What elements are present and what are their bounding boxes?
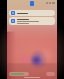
button[interactable] [9,17,55,25]
button[interactable] [9,10,55,16]
other: App notification [30,1,34,6]
button[interactable]: Action [46,72,55,76]
button[interactable]: Suggestion [9,72,29,76]
